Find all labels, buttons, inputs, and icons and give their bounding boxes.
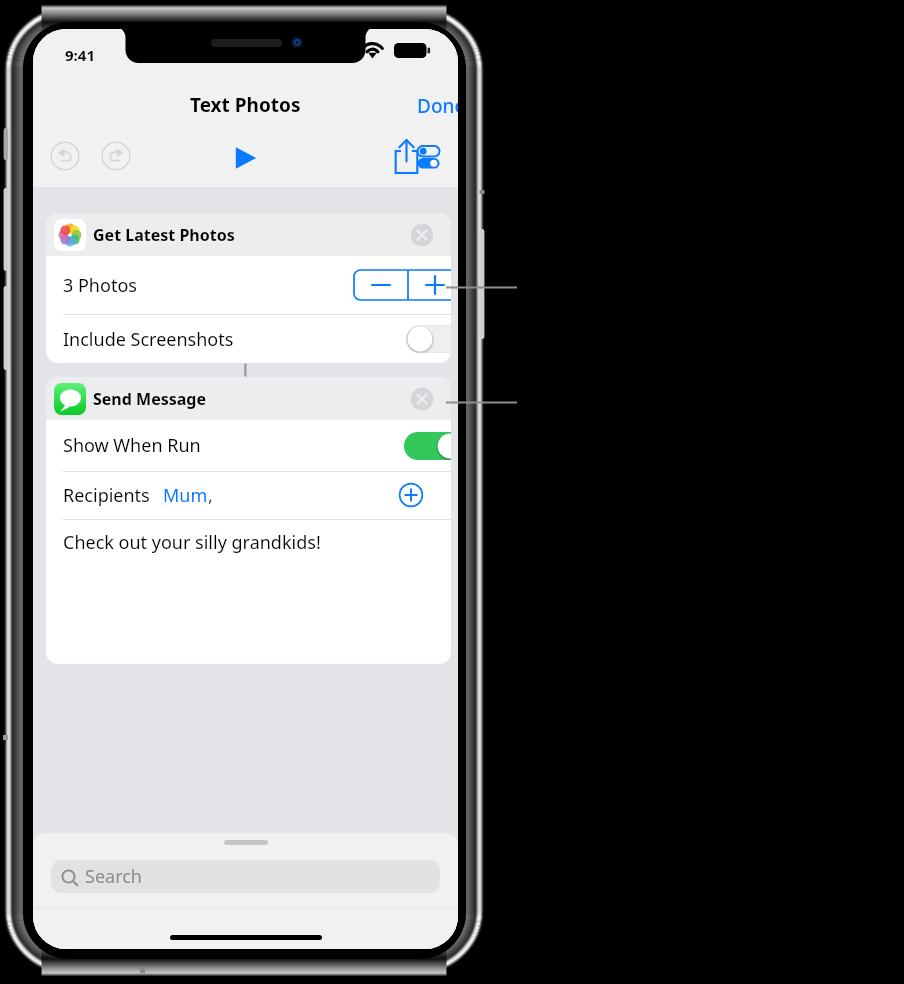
button[interactable]: Redo (95, 135, 137, 177)
button[interactable]: Increase photo count (408, 270, 451, 300)
button[interactable]: Off (406, 325, 451, 353)
button[interactable]: Send Message (46, 377, 451, 420)
button[interactable]: Done (417, 93, 458, 119)
staticText: Text Photos (190, 92, 301, 118)
button[interactable]: Share (384, 133, 428, 177)
staticText: Mum (163, 483, 208, 508)
staticText: 9:41 (65, 45, 95, 65)
button[interactable]: Get Latest Photos (46, 213, 451, 256)
button[interactable]: Run shortcut (223, 133, 269, 179)
staticText: Show When Run (63, 433, 201, 458)
button[interactable]: 3 Photos (46, 256, 451, 314)
staticText: Send Message (93, 388, 206, 410)
staticText: 3 Photos (63, 273, 137, 298)
button[interactable]: Remove action (409, 386, 435, 412)
button[interactable]: Check out your silly grandkids! (46, 520, 451, 664)
staticText: Check out your silly grandkids! (63, 530, 321, 555)
button[interactable]: Show When Run (46, 420, 451, 471)
button[interactable]: Include Screenshots (46, 315, 451, 363)
staticText: Include Screenshots (63, 327, 234, 352)
staticText: Recipients (63, 483, 150, 508)
staticText: Search (85, 864, 142, 889)
button[interactable]: Remove action (409, 222, 435, 248)
button[interactable]: Add recipient (398, 482, 424, 508)
button[interactable]: Undo (44, 135, 86, 177)
staticText: , (208, 483, 213, 508)
button[interactable]: Shortcut settings (406, 135, 450, 179)
button[interactable]: Recipients (46, 472, 451, 519)
button[interactable]: Decrease photo count (354, 270, 408, 300)
staticText: Get Latest Photos (93, 224, 235, 246)
staticText: Done (417, 93, 458, 119)
button[interactable]: Search (51, 860, 440, 893)
button[interactable]: On (404, 432, 451, 460)
